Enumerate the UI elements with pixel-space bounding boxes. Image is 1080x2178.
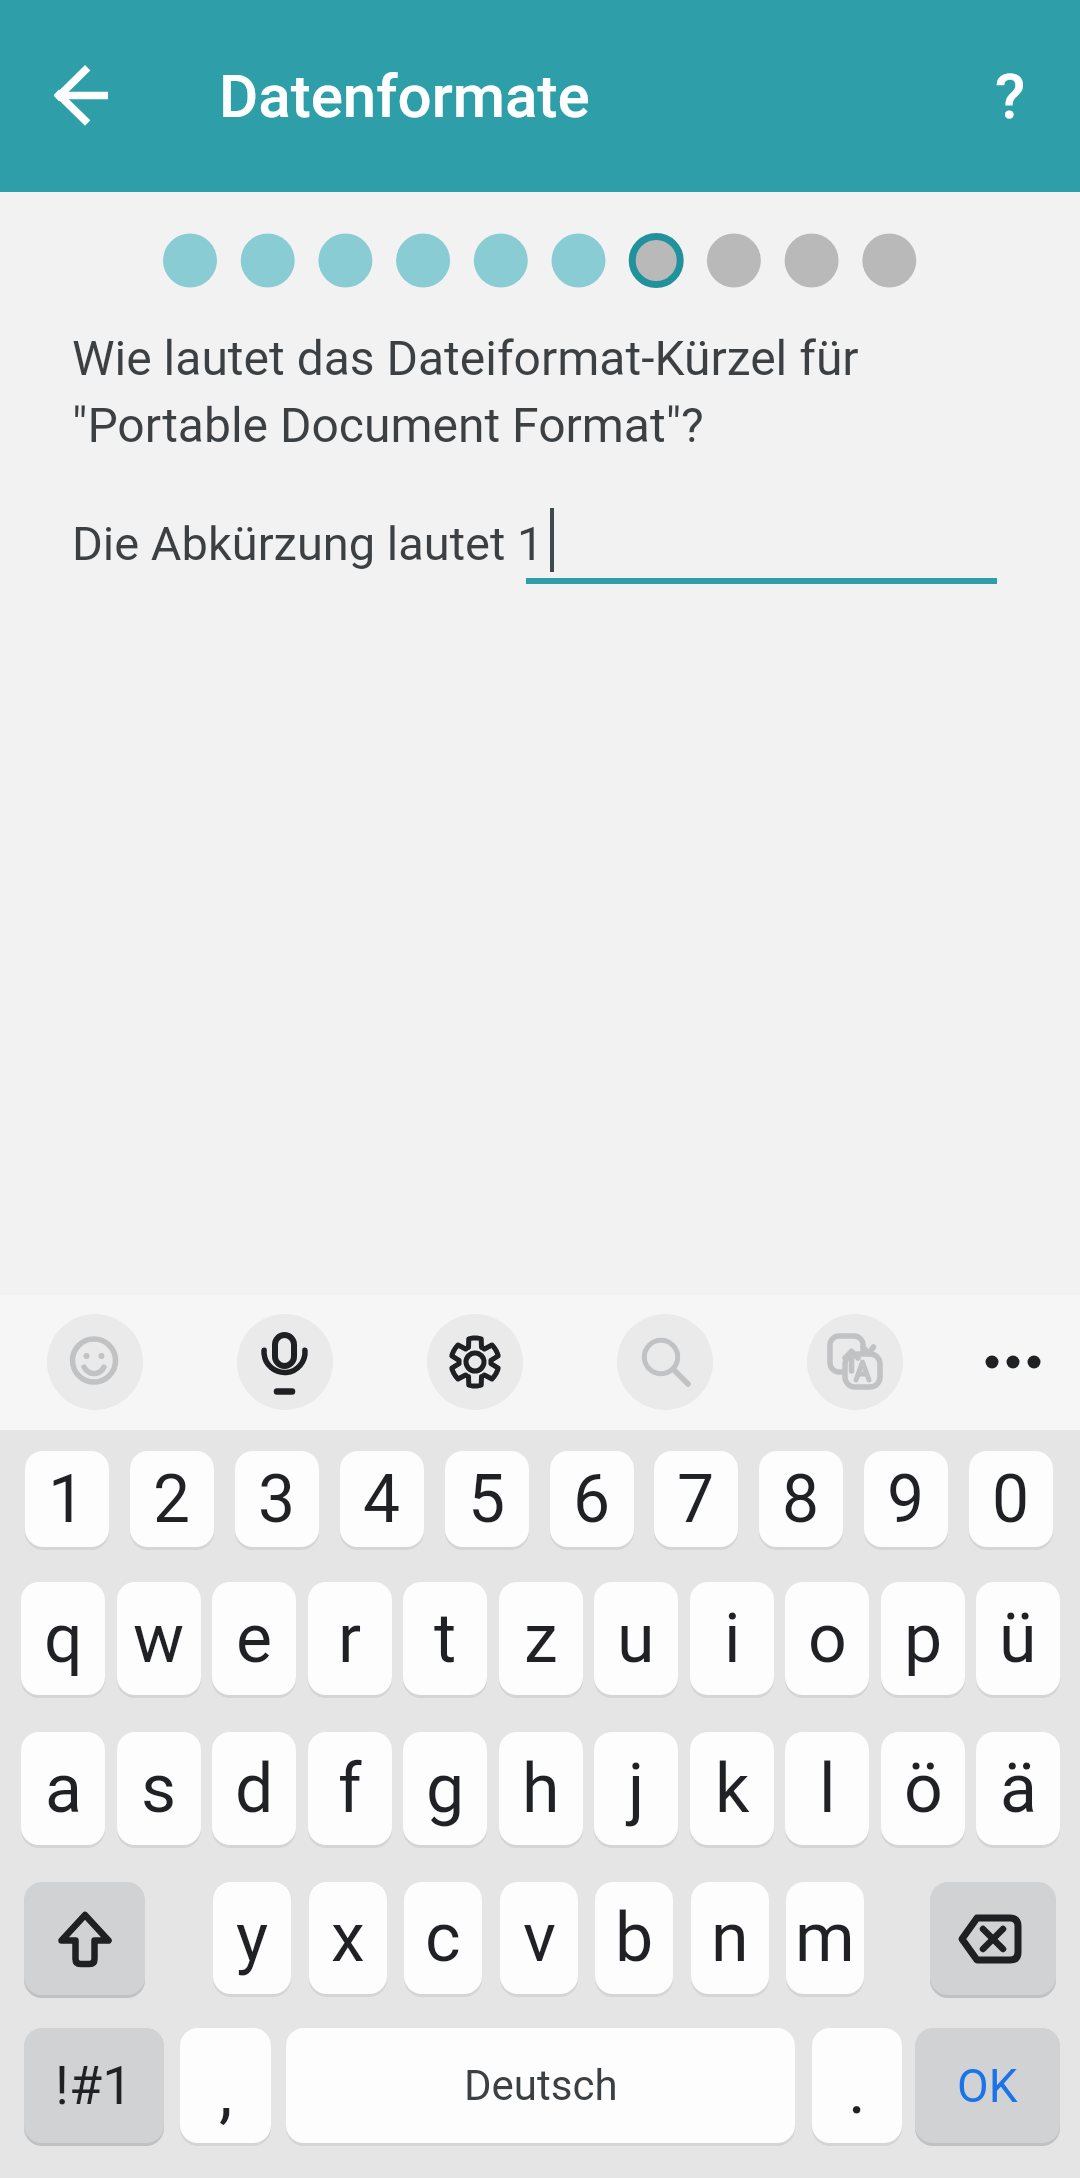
staticText: Die Abkürzung lautet 1 <box>72 516 544 571</box>
staticText: d <box>235 1749 274 1829</box>
button[interactable]: !#1 <box>24 2028 164 2143</box>
staticText: z <box>524 1599 558 1679</box>
button[interactable]: y <box>213 1882 291 1994</box>
button[interactable] <box>930 1882 1056 1995</box>
staticText: Deutsch <box>464 2061 618 2110</box>
button[interactable] <box>427 1314 523 1410</box>
button[interactable]: 2 <box>130 1451 214 1547</box>
button[interactable] <box>965 1314 1061 1410</box>
button[interactable]: v <box>500 1882 578 1994</box>
staticText: Datenformate <box>219 61 590 131</box>
button[interactable]: ü <box>976 1582 1060 1695</box>
button[interactable]: 5 <box>445 1451 529 1547</box>
button[interactable]: f <box>308 1732 392 1845</box>
staticText: 1 <box>48 1461 86 1538</box>
staticText: 4 <box>363 1461 401 1538</box>
button[interactable]: w <box>117 1582 201 1695</box>
staticText: p <box>904 1599 943 1679</box>
button[interactable] <box>72 498 997 586</box>
button[interactable]: h <box>499 1732 583 1845</box>
staticText: w <box>133 1599 185 1679</box>
staticText: t <box>434 1599 457 1679</box>
button[interactable]: ? <box>960 46 1060 146</box>
button[interactable]: OK <box>915 2028 1060 2143</box>
button[interactable]: 0 <box>969 1451 1053 1547</box>
staticText: OK <box>957 2059 1018 2113</box>
staticText: ü <box>999 1599 1037 1679</box>
button[interactable]: e <box>212 1582 296 1695</box>
staticText: 2 <box>153 1461 191 1538</box>
button[interactable]: 9 <box>864 1451 948 1547</box>
button[interactable]: g <box>403 1732 487 1845</box>
button[interactable]: u <box>594 1582 678 1695</box>
button[interactable]: Deutsch <box>286 2028 795 2143</box>
staticText: c <box>425 1898 461 1978</box>
button[interactable]: c <box>404 1882 482 1994</box>
button[interactable]: ä <box>976 1732 1060 1845</box>
staticText: i <box>724 1599 741 1679</box>
staticText: 0 <box>992 1461 1030 1538</box>
staticText: 5 <box>468 1461 506 1538</box>
button[interactable] <box>24 1882 145 1995</box>
button[interactable]: ö <box>881 1732 965 1845</box>
button[interactable]: , <box>180 2028 271 2143</box>
button[interactable]: z <box>499 1582 583 1695</box>
staticText: s <box>141 1749 177 1829</box>
staticText: . <box>848 2050 866 2130</box>
button[interactable]: 8 <box>759 1451 843 1547</box>
button[interactable]: r <box>308 1582 392 1695</box>
button[interactable] <box>807 1314 903 1410</box>
staticText: g <box>426 1749 465 1829</box>
staticText: j <box>628 1749 645 1829</box>
button[interactable]: . <box>812 2028 902 2143</box>
staticText: 6 <box>573 1461 611 1538</box>
button[interactable] <box>617 1314 713 1410</box>
staticText: l <box>819 1749 836 1829</box>
button[interactable]: p <box>881 1582 965 1695</box>
staticText: a <box>45 1749 82 1829</box>
staticText: ö <box>904 1749 943 1829</box>
staticText: r <box>338 1599 362 1679</box>
button[interactable]: d <box>212 1732 296 1845</box>
staticText: !#1 <box>55 2054 133 2117</box>
staticText: y <box>236 1898 269 1978</box>
button[interactable] <box>237 1314 333 1410</box>
staticText: f <box>338 1749 362 1829</box>
button[interactable]: n <box>691 1882 769 1994</box>
staticText: 3 <box>258 1461 296 1538</box>
button[interactable]: b <box>595 1882 673 1994</box>
button[interactable]: k <box>690 1732 774 1845</box>
staticText: u <box>617 1599 655 1679</box>
button[interactable]: 4 <box>340 1451 424 1547</box>
staticText: n <box>711 1898 749 1978</box>
button[interactable] <box>39 47 139 147</box>
staticText: q <box>44 1599 83 1679</box>
button[interactable]: 7 <box>654 1451 738 1547</box>
button[interactable]: 1 <box>25 1451 109 1547</box>
button[interactable]: j <box>594 1732 678 1845</box>
button[interactable]: a <box>21 1732 105 1845</box>
staticText: 7 <box>677 1461 715 1538</box>
button[interactable]: t <box>403 1582 487 1695</box>
staticText: v <box>523 1898 556 1978</box>
button[interactable]: o <box>785 1582 869 1695</box>
staticText: m <box>795 1898 855 1978</box>
staticText: "Portable Document Format"? <box>72 397 704 453</box>
staticText: 8 <box>782 1461 820 1538</box>
button[interactable]: 6 <box>550 1451 634 1547</box>
staticText: o <box>808 1599 847 1679</box>
button[interactable]: x <box>309 1882 387 1994</box>
button[interactable] <box>47 1314 143 1410</box>
button[interactable]: l <box>785 1732 869 1845</box>
button[interactable]: i <box>690 1582 774 1695</box>
button[interactable]: m <box>786 1882 864 1994</box>
staticText: b <box>615 1898 654 1978</box>
button[interactable]: 3 <box>235 1451 319 1547</box>
staticText: , <box>219 2052 233 2132</box>
staticText: Wie lautet das Dateiformat-Kürzel für <box>72 330 859 386</box>
button[interactable]: s <box>117 1732 201 1845</box>
staticText: x <box>331 1898 365 1978</box>
button[interactable]: q <box>21 1582 105 1695</box>
staticText: ? <box>995 60 1026 133</box>
